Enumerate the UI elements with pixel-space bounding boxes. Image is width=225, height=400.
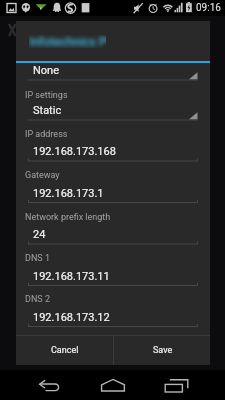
button[interactable] bbox=[16, 100, 210, 122]
staticText: 24 bbox=[33, 228, 46, 241]
button[interactable] bbox=[16, 122, 210, 162]
button[interactable]: Cancel bbox=[16, 336, 113, 365]
button[interactable]: Save bbox=[114, 336, 211, 365]
staticText: 192.168.173.12 bbox=[33, 311, 110, 324]
button[interactable]: Back bbox=[33, 374, 67, 396]
button[interactable] bbox=[16, 205, 210, 245]
staticText: 09:16 bbox=[196, 2, 221, 14]
button[interactable]: Recent apps bbox=[158, 374, 192, 396]
staticText: 192.168.173.1 bbox=[33, 187, 104, 200]
button[interactable] bbox=[16, 63, 210, 83]
staticText: Network prefix length bbox=[25, 212, 111, 223]
staticText: Gateway bbox=[25, 170, 60, 181]
staticText: Save bbox=[153, 345, 173, 356]
button[interactable] bbox=[16, 164, 210, 204]
staticText: 192.168.173.168 bbox=[33, 145, 116, 158]
button[interactable] bbox=[16, 288, 210, 328]
staticText: DNS 2 bbox=[25, 294, 50, 305]
button[interactable]: Home bbox=[96, 374, 130, 396]
staticText: DNS 1 bbox=[25, 253, 50, 264]
staticText: Infotechnics Pe bbox=[29, 35, 106, 48]
staticText: Static bbox=[33, 104, 62, 117]
staticText: None bbox=[33, 64, 60, 77]
staticText: IP settings bbox=[25, 90, 68, 101]
staticText: 192.168.173.11 bbox=[33, 270, 110, 283]
button[interactable] bbox=[16, 247, 210, 287]
staticText: Cancel bbox=[51, 345, 79, 356]
staticText: IP address bbox=[25, 129, 68, 140]
